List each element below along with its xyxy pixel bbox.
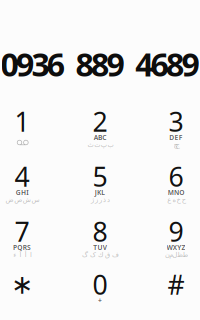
staticText: GHI: [16, 188, 28, 197]
staticText: JKL: [95, 188, 105, 197]
button[interactable]: 2: [0, 0, 200, 320]
staticText: ج چ: [173, 141, 179, 148]
staticText: ا أ آ ء: [13, 251, 31, 258]
staticText: PQRS: [13, 243, 31, 252]
button[interactable]: #: [0, 0, 200, 320]
button[interactable]: 0: [0, 0, 200, 320]
staticText: 4: [14, 159, 29, 194]
staticText: 2: [92, 104, 107, 139]
staticText: 8: [92, 214, 107, 249]
staticText: +: [98, 296, 102, 305]
staticText: TUV: [93, 243, 107, 252]
staticText: 0936 889 4689: [1, 43, 199, 85]
button[interactable]: 6: [0, 0, 200, 320]
button[interactable]: 8: [0, 0, 200, 320]
staticText: 0: [92, 267, 107, 302]
button[interactable]: 7: [0, 0, 200, 320]
staticText: س ش ص ض: [5, 196, 39, 203]
staticText: WXYZ: [167, 243, 185, 252]
staticText: ب پ ت ث: [87, 141, 113, 148]
staticText: د ذ ر ز ژ: [90, 196, 109, 203]
staticText: 1: [14, 104, 29, 139]
button[interactable]: 3: [0, 0, 200, 320]
button[interactable]: 9: [0, 0, 200, 320]
staticText: ABC: [94, 133, 106, 142]
staticText: ط ظ ل م ن: [165, 251, 187, 258]
staticText: 3: [168, 104, 183, 139]
button[interactable]: 1 voicemail: [0, 0, 200, 320]
staticText: ح خ ه ع: [167, 196, 185, 203]
staticText: DEF: [169, 133, 183, 142]
button[interactable]: 4: [0, 0, 200, 320]
button[interactable]: 5: [0, 0, 200, 320]
button[interactable]: ∗: [0, 0, 200, 320]
staticText: 6: [168, 159, 183, 194]
staticText: 5: [92, 159, 107, 194]
staticText: 7: [14, 214, 29, 249]
staticText: ∗: [11, 269, 33, 300]
staticText: 9: [168, 214, 183, 249]
staticText: #: [167, 267, 184, 302]
staticText: MNO: [168, 188, 184, 197]
staticText: ف ق ك ک گ: [81, 251, 118, 258]
